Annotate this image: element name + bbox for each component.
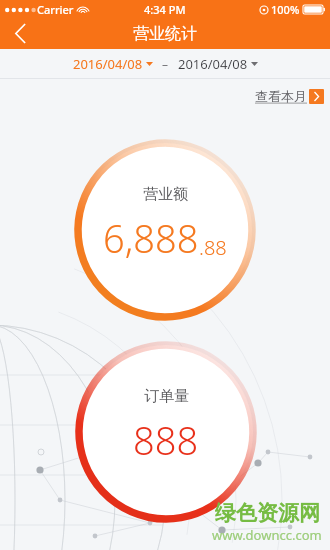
staticText: 查看本月: [255, 88, 307, 104]
button[interactable]: Back: [0, 18, 40, 49]
staticText: .88: [199, 234, 227, 261]
staticText: 2016/04/08: [73, 55, 143, 73]
staticText: Carrier: [37, 2, 74, 17]
staticText: 绿色资源网: [215, 500, 320, 526]
button[interactable]: 营业额: [73, 138, 257, 322]
staticText: 4:34 PM: [144, 2, 186, 17]
button[interactable]: 订单量: [74, 340, 258, 524]
staticText: 888: [133, 414, 199, 466]
button[interactable]: 2016/04/08: [73, 55, 153, 73]
staticText: 营业统计: [133, 24, 197, 44]
staticText: www.downcc.com: [212, 526, 322, 544]
staticText: 营业额: [143, 185, 188, 204]
staticText: 100%: [271, 2, 300, 17]
staticText: 2016/04/08: [178, 55, 248, 73]
staticText: 订单量: [144, 387, 189, 406]
staticText: 6,888: [103, 212, 199, 264]
button[interactable]: 2016/04/08: [178, 55, 258, 73]
button[interactable]: 查看本月: [255, 88, 324, 104]
staticText: –: [162, 56, 169, 72]
